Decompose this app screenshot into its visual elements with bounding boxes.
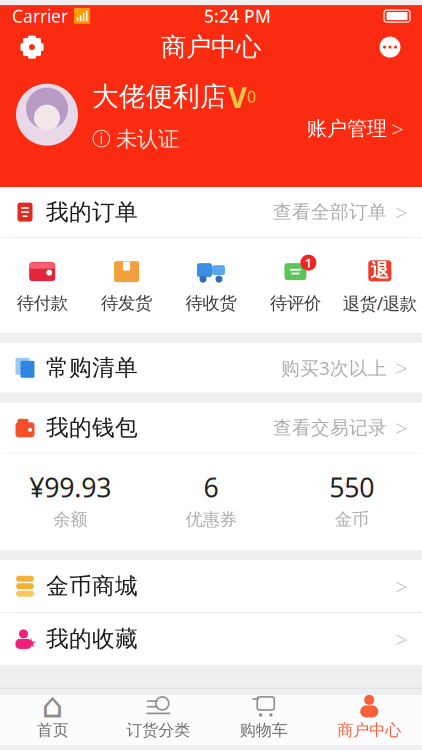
staticText: ¥99.93: [29, 469, 111, 505]
staticText: 📶: [73, 8, 91, 24]
staticText: 退货/退款: [343, 292, 417, 315]
button[interactable]: 金币商城: [0, 560, 422, 612]
staticText: 商户中心: [161, 31, 261, 63]
staticText: 账户管理: [307, 116, 387, 141]
staticText: 查看交易记录: [273, 416, 387, 439]
staticText: 我的收藏: [46, 625, 138, 653]
button[interactable]: 退: [338, 252, 422, 319]
staticText: Carrier: [12, 5, 68, 28]
button[interactable]: 消息: [368, 28, 412, 66]
button[interactable]: ★: [0, 613, 422, 665]
button[interactable]: ⌂: [0, 688, 105, 740]
button[interactable]: 我的订单: [0, 187, 422, 237]
button[interactable]: 设置: [10, 28, 54, 66]
staticText: 0: [247, 86, 256, 107]
button[interactable]: 1: [253, 253, 338, 318]
staticText: 购物车: [240, 720, 288, 740]
button[interactable]: 商户中心: [316, 688, 422, 740]
staticText: >: [395, 197, 408, 227]
button[interactable]: 我的钱包: [0, 403, 422, 453]
staticText: 待评价: [270, 293, 321, 314]
staticText: 优惠券: [185, 509, 236, 530]
staticText: >: [395, 353, 408, 383]
staticText: 我的钱包: [46, 414, 138, 442]
staticText: 待收货: [185, 293, 236, 314]
button[interactable]: 待付款: [0, 253, 84, 318]
staticText: 550: [329, 469, 374, 505]
staticText: 首页: [37, 720, 69, 740]
staticText: 余额: [53, 509, 87, 530]
button[interactable]: 购物车: [211, 688, 316, 740]
staticText: >: [391, 114, 404, 144]
staticText: 常购清单: [46, 354, 138, 382]
staticText: V: [228, 77, 247, 116]
staticText: 购买3次以上: [281, 355, 387, 380]
staticText: >: [395, 624, 408, 654]
staticText: ★: [25, 635, 37, 650]
staticText: 商户中心: [337, 720, 401, 740]
staticText: 查看全部订单: [273, 201, 387, 223]
staticText: ⌂: [42, 686, 64, 725]
staticText: 退: [370, 259, 389, 282]
staticText: 我的订单: [46, 198, 138, 226]
staticText: 5:24 PM: [204, 5, 271, 28]
staticText: 大佬便利店: [92, 80, 227, 113]
staticText: 1: [304, 254, 312, 271]
staticText: 金币商城: [46, 572, 138, 600]
button[interactable]: 常购清单: [0, 343, 422, 393]
staticText: 待付款: [17, 293, 68, 314]
staticText: 6: [203, 469, 218, 505]
staticText: 金币: [335, 509, 369, 530]
button[interactable]: 账户管理: [307, 86, 406, 144]
staticText: >: [395, 413, 408, 443]
staticText: 待发货: [101, 293, 152, 314]
staticText: 未认证: [116, 126, 179, 152]
staticText: >: [395, 571, 408, 601]
button[interactable]: 待发货: [84, 253, 169, 318]
staticText: 订货分类: [126, 720, 190, 740]
button[interactable]: 待收货: [169, 253, 253, 318]
button[interactable]: 订货分类: [105, 688, 211, 740]
staticText: ⓘ: [92, 128, 111, 151]
